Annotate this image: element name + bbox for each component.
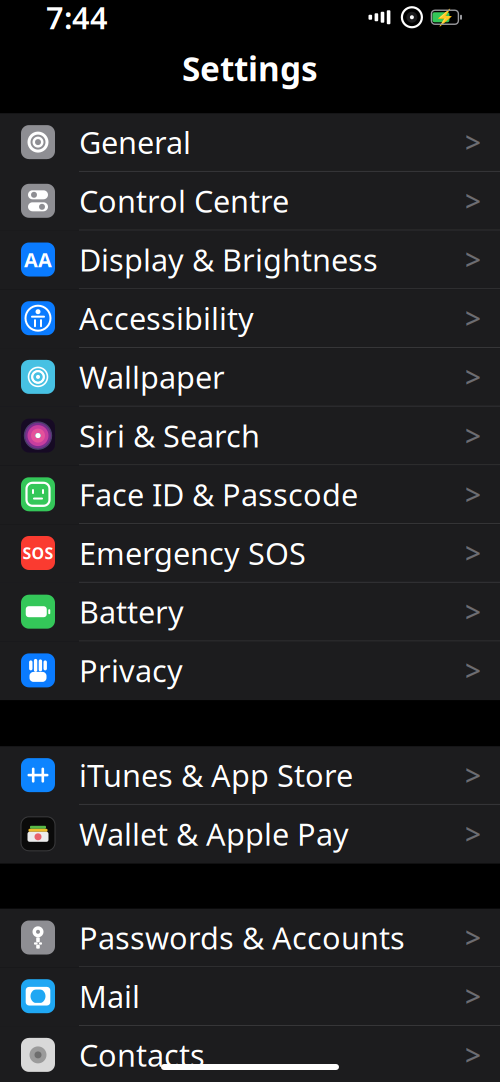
staticText: Display & Brightness xyxy=(79,239,378,280)
staticText: Settings xyxy=(182,46,318,90)
staticText: Face ID & Passcode xyxy=(79,474,358,515)
staticText: iTunes & App Store xyxy=(79,755,353,795)
button[interactable]: Mail xyxy=(0,967,500,1026)
staticText: General xyxy=(79,122,191,162)
staticText: > xyxy=(465,358,481,395)
staticText: ⚡ xyxy=(435,8,455,26)
button[interactable]: Accessibility xyxy=(0,289,500,348)
staticText: > xyxy=(465,476,481,513)
button[interactable]: iTunes & App Store xyxy=(0,746,500,805)
staticText: Siri & Search xyxy=(79,415,260,456)
staticText: > xyxy=(465,756,481,794)
staticText: > xyxy=(465,241,481,278)
button[interactable]: Contacts xyxy=(0,1026,500,1082)
button[interactable]: Wallet & Apple Pay xyxy=(0,805,500,864)
staticText: Wallet & Apple Pay xyxy=(79,813,349,854)
staticText: Privacy xyxy=(79,650,183,691)
staticText: > xyxy=(465,534,481,572)
button[interactable]: Wallpaper xyxy=(0,348,500,407)
staticText: Contacts xyxy=(79,1034,205,1075)
staticText: Emergency SOS xyxy=(79,533,306,573)
staticText: > xyxy=(465,815,481,852)
button[interactable]: General xyxy=(0,113,500,172)
button[interactable]: Siri & Search xyxy=(0,407,500,465)
staticText: SOS xyxy=(22,542,53,564)
button[interactable]: Control Centre xyxy=(0,172,500,231)
staticText: > xyxy=(465,182,481,219)
staticText: Control Centre xyxy=(79,180,289,221)
staticText: Wallpaper xyxy=(79,356,225,397)
staticText: > xyxy=(465,652,481,689)
staticText: > xyxy=(465,300,481,337)
staticText: > xyxy=(465,978,481,1015)
staticText: > xyxy=(465,1036,481,1073)
staticText: Mail xyxy=(79,976,140,1016)
button[interactable]: SOS xyxy=(0,524,500,583)
staticText: 7:44 xyxy=(46,0,108,38)
button[interactable]: Face ID & Passcode xyxy=(0,465,500,524)
staticText: AA xyxy=(24,246,52,273)
button[interactable]: Privacy xyxy=(0,641,500,700)
staticText: Battery xyxy=(79,591,184,632)
staticText: > xyxy=(465,593,481,630)
staticText: Passwords & Accounts xyxy=(79,917,405,958)
staticText: > xyxy=(465,919,481,956)
staticText: Accessibility xyxy=(79,298,254,338)
staticText: > xyxy=(465,123,481,161)
staticText: > xyxy=(465,417,481,454)
button[interactable]: AA xyxy=(0,231,500,289)
button[interactable]: Passwords & Accounts xyxy=(0,909,500,967)
button[interactable]: Battery xyxy=(0,583,500,641)
